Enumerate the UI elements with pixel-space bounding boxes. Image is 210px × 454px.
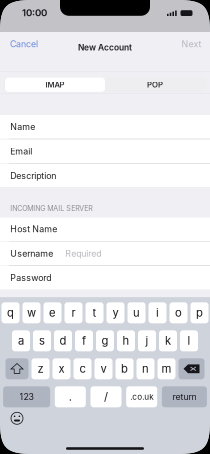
staticText: z — [37, 362, 43, 376]
staticText: b — [121, 362, 128, 376]
button[interactable]: Email — [0, 139, 210, 163]
button[interactable]: . — [55, 386, 86, 407]
button[interactable]: t — [85, 302, 103, 323]
button[interactable]: c — [73, 358, 91, 379]
button[interactable]: IMAP — [5, 78, 105, 92]
staticText: g — [101, 334, 108, 348]
staticText: l — [187, 334, 190, 348]
button[interactable]: z — [31, 358, 49, 379]
staticText: k — [165, 334, 171, 348]
button[interactable]: b — [115, 358, 133, 379]
button[interactable]: e — [43, 302, 61, 323]
button[interactable]: y — [106, 302, 124, 323]
button[interactable]: Username — [0, 242, 210, 265]
button[interactable]: j — [138, 330, 156, 351]
staticText: Name — [10, 122, 35, 132]
button[interactable]: x — [52, 358, 70, 379]
button[interactable]: r — [64, 302, 82, 323]
staticText: f — [82, 334, 86, 348]
staticText: w — [27, 306, 36, 320]
staticText: Password — [10, 273, 51, 283]
staticText: Email — [10, 146, 32, 157]
button[interactable]: m — [157, 358, 175, 379]
staticText: POP — [147, 80, 163, 89]
staticText: IMAP — [45, 80, 64, 89]
staticText: Username — [10, 248, 53, 259]
button[interactable]: Cancel — [10, 36, 44, 52]
staticText: i — [156, 306, 159, 320]
staticText: c — [79, 362, 85, 376]
staticText: e — [49, 306, 56, 320]
button[interactable]: Shift — [5, 358, 28, 379]
staticText: Required — [65, 248, 101, 259]
staticText: New Account — [78, 42, 132, 53]
staticText: t — [92, 306, 96, 320]
staticText: return — [172, 391, 196, 402]
staticText: x — [58, 362, 64, 376]
button[interactable]: Next — [177, 36, 201, 52]
button[interactable]: Emoji keyboard — [0, 409, 34, 427]
button[interactable]: Host Name — [0, 217, 210, 241]
button[interactable]: n — [136, 358, 154, 379]
button[interactable]: f — [75, 330, 93, 351]
button[interactable]: d — [54, 330, 72, 351]
button[interactable]: 123 — [3, 386, 50, 407]
button[interactable]: .co.uk — [126, 386, 157, 407]
button[interactable]: q — [1, 302, 19, 323]
staticText: q — [7, 306, 14, 320]
staticText: .co.uk — [130, 392, 153, 402]
staticText: 10:00 — [22, 7, 47, 19]
staticText: d — [59, 334, 66, 348]
button[interactable]: return — [162, 386, 207, 407]
button[interactable]: w — [22, 302, 40, 323]
staticText: . — [69, 390, 72, 404]
button[interactable]: Backspace — [178, 358, 204, 379]
staticText: Cancel — [10, 39, 38, 49]
staticText: Host Name — [10, 224, 57, 234]
button[interactable]: / — [90, 386, 121, 407]
button[interactable]: k — [159, 330, 177, 351]
button[interactable]: g — [96, 330, 114, 351]
staticText: Description — [10, 170, 56, 181]
staticText: n — [142, 362, 149, 376]
button[interactable]: POP — [105, 78, 205, 92]
staticText: m — [161, 362, 171, 376]
button[interactable]: u — [127, 302, 145, 323]
staticText: INCOMING MAIL SERVER — [10, 204, 93, 213]
staticText: s — [39, 334, 45, 348]
button[interactable]: a — [12, 330, 30, 351]
staticText: 123 — [20, 391, 34, 402]
button[interactable]: i — [148, 302, 166, 323]
button[interactable]: p — [190, 302, 208, 323]
staticText: / — [104, 390, 108, 404]
staticText: u — [133, 306, 140, 320]
staticText: p — [196, 306, 203, 320]
staticText: o — [175, 306, 182, 320]
staticText: v — [100, 362, 106, 376]
button[interactable]: o — [169, 302, 187, 323]
button[interactable]: l — [180, 330, 198, 351]
button[interactable]: Description — [0, 164, 210, 188]
staticText: y — [112, 306, 118, 320]
button[interactable]: s — [33, 330, 51, 351]
button[interactable]: Password — [0, 266, 210, 290]
staticText: r — [71, 306, 75, 320]
staticText: a — [18, 334, 24, 348]
button[interactable]: v — [94, 358, 112, 379]
staticText: Next — [181, 39, 201, 49]
staticText: h — [122, 334, 129, 348]
staticText: j — [145, 334, 148, 348]
button[interactable]: Name — [0, 115, 210, 139]
button[interactable]: h — [117, 330, 135, 351]
